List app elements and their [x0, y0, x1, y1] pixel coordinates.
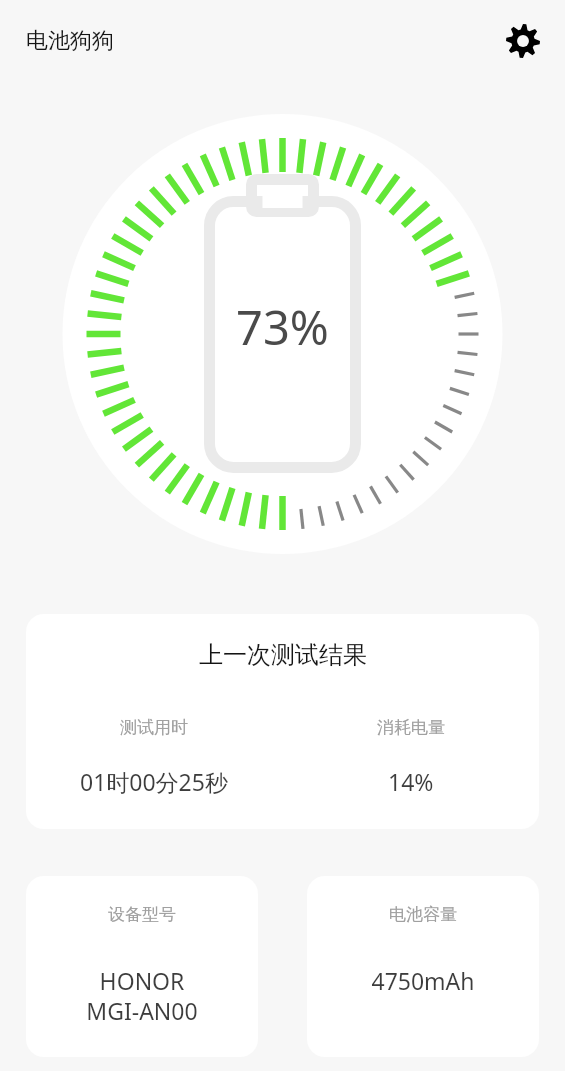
staticText: 消耗电量	[377, 717, 445, 738]
staticText: 上一次测试结果	[199, 640, 367, 670]
button[interactable]: 电池容量	[307, 876, 539, 1057]
staticText: 设备型号	[108, 904, 176, 925]
staticText: 73%	[236, 295, 329, 359]
button[interactable]: Settings	[499, 17, 547, 65]
staticText: 01时00分25秒	[80, 766, 228, 797]
staticText: 电池狗狗	[26, 27, 114, 55]
button[interactable]: 设备型号	[26, 876, 258, 1057]
staticText: 电池容量	[389, 904, 457, 925]
staticText: 14%	[388, 766, 434, 797]
staticText: HONOR MGI-AN00	[86, 965, 198, 1026]
staticText: 4750mAh	[371, 965, 475, 996]
button[interactable]: 上一次测试结果	[26, 614, 539, 829]
staticText: 测试用时	[120, 717, 188, 738]
